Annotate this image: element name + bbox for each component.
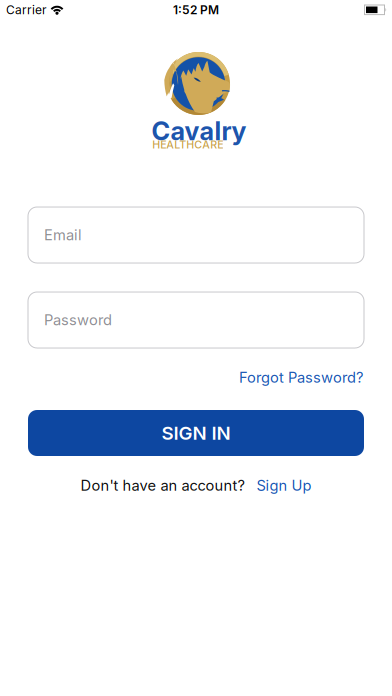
button[interactable]: Sign Up [256, 477, 311, 494]
staticText: Don't have an account? [80, 477, 244, 494]
button[interactable]: Forgot Password? [239, 369, 363, 386]
button[interactable]: Password [28, 292, 364, 348]
staticText: Cavalry [151, 116, 246, 146]
staticText: Sign Up [256, 477, 311, 494]
staticText: Forgot Password? [239, 369, 363, 386]
staticText: HEALTHCARE [152, 138, 223, 151]
staticText: Password [44, 311, 112, 329]
staticText: Carrier [6, 3, 47, 17]
staticText: 1:52 PM [173, 3, 219, 17]
button[interactable]: SIGN IN [28, 410, 364, 456]
staticText: SIGN IN [161, 422, 230, 444]
button[interactable]: Email [28, 207, 364, 263]
staticText: Email [44, 226, 82, 244]
